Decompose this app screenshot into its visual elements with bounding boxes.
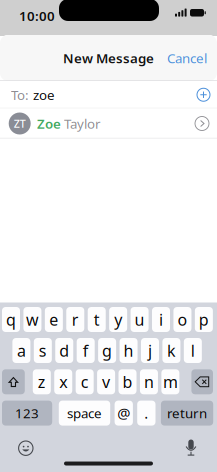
staticText: m [163, 371, 178, 392]
staticText: j [148, 340, 152, 361]
staticText: c [81, 371, 89, 392]
button[interactable]: @ [115, 401, 133, 426]
button[interactable]: p [195, 307, 213, 332]
staticText: Cancel [167, 49, 207, 67]
button[interactable]: Shift [2, 369, 25, 394]
staticText: a [17, 340, 26, 361]
staticText: q [6, 309, 16, 330]
button[interactable]: w [23, 307, 41, 332]
button[interactable]: i [152, 307, 170, 332]
staticText: ZT [14, 116, 26, 131]
button[interactable]: h [120, 338, 138, 363]
staticText: r [72, 309, 79, 330]
staticText: g [102, 340, 112, 361]
staticText: w [26, 309, 39, 330]
button[interactable]: x [54, 369, 72, 394]
button[interactable]: Delete [191, 369, 213, 394]
button[interactable]: l [184, 338, 202, 363]
button[interactable]: s [34, 338, 52, 363]
staticText: x [59, 371, 67, 392]
button[interactable]: q [2, 307, 20, 332]
staticText: p [199, 309, 209, 330]
button[interactable]: r [66, 307, 84, 332]
button[interactable]: o [173, 307, 191, 332]
staticText: o [177, 309, 187, 330]
button[interactable]: k [162, 338, 180, 363]
staticText: f [83, 340, 89, 361]
staticText: n [144, 371, 154, 392]
staticText: y [114, 309, 122, 330]
staticText: i [159, 309, 163, 330]
staticText: s [39, 340, 47, 361]
staticText: u [135, 309, 145, 330]
staticText: t [94, 309, 100, 330]
button[interactable]: c [76, 369, 94, 394]
button[interactable]: n [140, 369, 158, 394]
button[interactable]: y [109, 307, 127, 332]
button[interactable]: g [98, 338, 116, 363]
button[interactable]: u [131, 307, 149, 332]
button[interactable]: d [55, 338, 73, 363]
staticText: h [124, 340, 134, 361]
staticText: e [49, 309, 58, 330]
staticText: v [102, 371, 110, 392]
staticText: To: [11, 86, 29, 104]
button[interactable]: return [161, 401, 213, 426]
staticText: Zoe [37, 115, 61, 132]
button[interactable]: Emoji [19, 441, 33, 455]
staticText: Taylor [64, 115, 101, 132]
button[interactable]: Dictation [185, 439, 196, 456]
button[interactable]: Add contact [197, 83, 217, 106]
button[interactable]: z [33, 369, 51, 394]
button[interactable]: j [141, 338, 159, 363]
button[interactable]: Cancel [162, 43, 212, 73]
button[interactable]: . [137, 401, 155, 426]
staticText: 123 [15, 404, 39, 422]
staticText: l [191, 340, 195, 361]
staticText: k [167, 340, 176, 361]
staticText: 10:00 [19, 7, 55, 25]
staticText: z [38, 371, 46, 392]
button[interactable]: t [88, 307, 106, 332]
button[interactable]: 123 [2, 401, 52, 426]
staticText: b [122, 371, 132, 392]
button[interactable]: v [97, 369, 115, 394]
staticText: return [167, 404, 207, 422]
button[interactable]: f [77, 338, 95, 363]
button[interactable]: m [161, 369, 179, 394]
button[interactable]: ZT [0, 108, 217, 138]
staticText: New Message [63, 49, 154, 67]
button[interactable]: space [59, 401, 110, 426]
staticText: space [67, 404, 102, 422]
button[interactable]: e [45, 307, 63, 332]
button[interactable]: a [12, 338, 30, 363]
staticText: d [59, 340, 69, 361]
staticText: . [144, 403, 148, 423]
staticText: zoe [33, 86, 55, 104]
staticText: @ [117, 403, 130, 423]
button[interactable]: b [118, 369, 136, 394]
